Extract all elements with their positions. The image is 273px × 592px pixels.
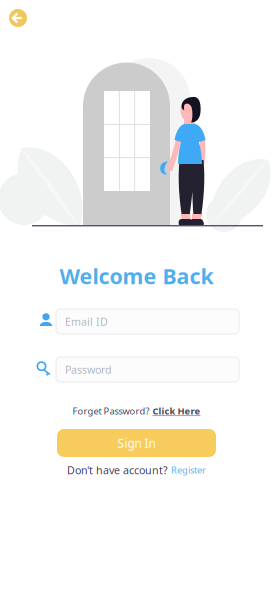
button[interactable]: Email ID [56, 309, 239, 334]
staticText: Welcome Back [59, 262, 213, 290]
staticText: Forget Password? [72, 405, 149, 417]
staticText: Password [65, 362, 112, 377]
staticText: Register [171, 464, 206, 476]
button[interactable]: Password [56, 357, 239, 382]
staticText: Email ID [65, 314, 108, 329]
button[interactable]: Back [4, 4, 32, 32]
button[interactable]: Register [171, 464, 206, 476]
staticText: Don't have account? [67, 463, 168, 477]
staticText: Sign In [117, 435, 155, 451]
button[interactable]: Click Here [152, 405, 200, 417]
staticText: Click Here [152, 405, 200, 417]
button[interactable]: Sign In [57, 429, 216, 457]
